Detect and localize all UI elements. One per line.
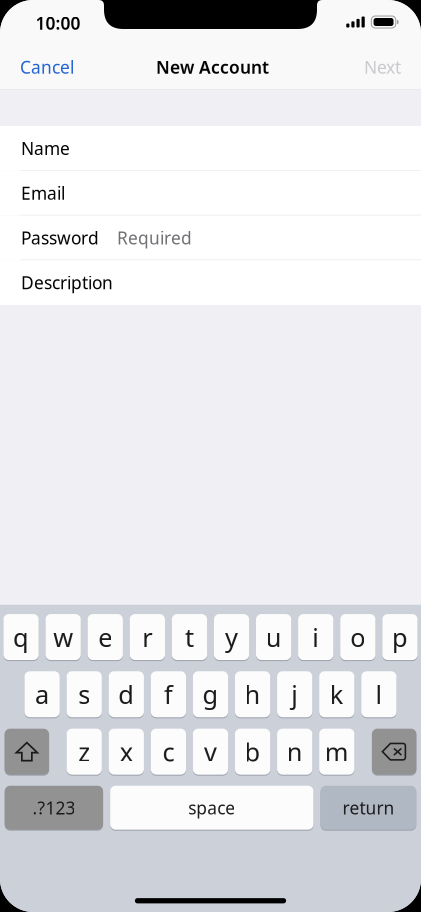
- staticText: z: [78, 735, 90, 768]
- button[interactable]: .?123: [5, 785, 103, 830]
- staticText: v: [204, 735, 217, 768]
- button[interactable]: Shift: [5, 728, 49, 775]
- button[interactable]: c: [151, 728, 186, 775]
- staticText: .?123: [32, 796, 75, 819]
- staticText: e: [98, 620, 112, 654]
- button[interactable]: space: [110, 785, 313, 830]
- staticText: Cancel: [20, 55, 74, 78]
- button[interactable]: h: [235, 671, 270, 718]
- staticText: g: [202, 677, 218, 711]
- button[interactable]: k: [319, 671, 354, 718]
- button[interactable]: Password: [0, 215, 421, 260]
- button[interactable]: n: [277, 728, 312, 775]
- button[interactable]: e: [88, 613, 123, 661]
- button[interactable]: q: [3, 613, 39, 661]
- staticText: Password: [21, 226, 99, 249]
- button[interactable]: m: [319, 728, 354, 775]
- button[interactable]: Name: [0, 126, 421, 171]
- staticText: s: [78, 677, 90, 711]
- button[interactable]: return: [320, 785, 416, 830]
- button[interactable]: b: [235, 728, 270, 775]
- button[interactable]: z: [66, 728, 102, 775]
- button[interactable]: j: [277, 671, 312, 718]
- staticText: New Account: [156, 55, 269, 78]
- button[interactable]: d: [109, 671, 144, 718]
- staticText: Email: [21, 182, 65, 205]
- staticText: d: [118, 677, 134, 711]
- staticText: h: [245, 677, 261, 711]
- staticText: w: [53, 620, 73, 654]
- staticText: Required: [117, 226, 192, 249]
- staticText: q: [13, 620, 29, 654]
- button[interactable]: Cancel: [0, 46, 94, 91]
- button[interactable]: r: [130, 613, 165, 661]
- button[interactable]: f: [151, 671, 186, 718]
- staticText: j: [291, 677, 298, 711]
- button[interactable]: w: [45, 613, 81, 661]
- staticText: x: [120, 735, 133, 768]
- staticText: f: [164, 677, 173, 711]
- button[interactable]: t: [172, 613, 207, 661]
- button[interactable]: i: [298, 613, 333, 661]
- staticText: k: [330, 677, 344, 711]
- staticText: l: [375, 677, 382, 711]
- staticText: return: [342, 796, 394, 819]
- staticText: c: [162, 735, 174, 768]
- staticText: y: [225, 620, 238, 654]
- button[interactable]: o: [340, 613, 375, 661]
- staticText: a: [35, 677, 49, 711]
- staticText: space: [188, 796, 235, 819]
- button[interactable]: y: [214, 613, 249, 661]
- staticText: b: [245, 735, 261, 768]
- button[interactable]: l: [361, 671, 396, 718]
- staticText: Next: [364, 55, 401, 78]
- staticText: Description: [21, 271, 113, 294]
- staticText: t: [185, 620, 194, 654]
- button[interactable]: Delete: [372, 728, 416, 775]
- staticText: i: [312, 620, 319, 654]
- button[interactable]: Description: [0, 260, 421, 305]
- staticText: u: [266, 620, 282, 654]
- button[interactable]: g: [193, 671, 228, 718]
- staticText: p: [392, 620, 408, 654]
- staticText: m: [325, 735, 349, 768]
- button[interactable]: v: [193, 728, 228, 775]
- staticText: o: [350, 620, 365, 654]
- button[interactable]: a: [24, 671, 60, 718]
- button[interactable]: x: [109, 728, 144, 775]
- button[interactable]: s: [66, 671, 102, 718]
- staticText: 10:00: [35, 11, 80, 34]
- staticText: n: [287, 735, 303, 768]
- button[interactable]: p: [382, 613, 418, 661]
- button[interactable]: Next: [344, 46, 421, 91]
- button[interactable]: Email: [0, 171, 421, 216]
- staticText: Name: [21, 137, 70, 160]
- button[interactable]: u: [256, 613, 291, 661]
- staticText: r: [142, 620, 152, 654]
